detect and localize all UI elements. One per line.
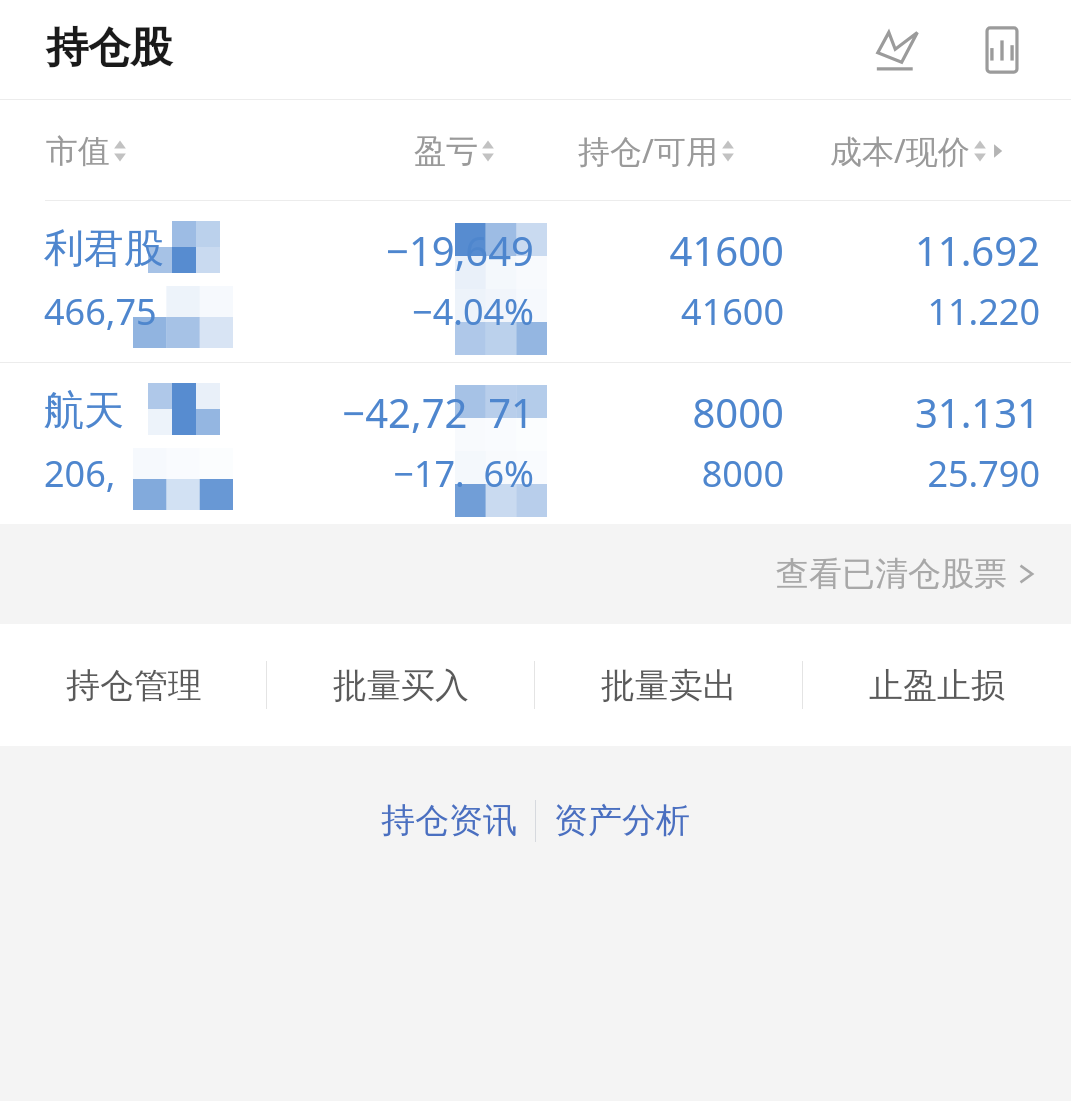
staticText: 持仓资讯	[381, 799, 517, 842]
button[interactable]: 利君股	[0, 201, 1071, 362]
staticText: 41600	[544, 287, 784, 336]
button[interactable]: Bar chart	[963, 11, 1041, 89]
staticText: 8000	[544, 385, 784, 439]
staticText: 11.692	[800, 223, 1040, 277]
staticText: 利君股	[44, 223, 164, 273]
staticText: 206,	[44, 449, 116, 498]
button[interactable]: 市值	[46, 131, 127, 171]
staticText: 止盈止损	[869, 664, 1005, 707]
button[interactable]: 批量卖出	[535, 624, 803, 746]
staticText: 市值	[46, 131, 110, 171]
button[interactable]: 批量买入	[267, 624, 535, 746]
staticText: 资产分析	[554, 799, 690, 842]
staticText: 25.790	[800, 449, 1040, 498]
button[interactable]: 止盈止损	[803, 624, 1071, 746]
staticText: 持仓/可用	[578, 129, 718, 173]
button[interactable]: 持仓管理	[0, 624, 267, 746]
staticText: 31.131	[800, 385, 1040, 439]
staticText: 批量卖出	[601, 664, 737, 707]
staticText: 盈亏	[414, 131, 478, 171]
button[interactable]: 成本/现价	[830, 129, 1005, 173]
staticText: 批量买入	[333, 664, 469, 707]
staticText: 持仓股	[46, 22, 172, 75]
staticText: 41600	[544, 223, 784, 277]
staticText: −42,72 71	[234, 385, 534, 439]
staticText: −17. 6%	[234, 449, 534, 498]
staticText: 8000	[544, 449, 784, 498]
staticText: 持仓管理	[66, 664, 202, 707]
staticText: −4.04%	[234, 287, 534, 336]
button[interactable]: 查看已清仓股票	[766, 539, 1047, 609]
staticText: 成本/现价	[830, 129, 970, 173]
button[interactable]: 持仓资讯	[363, 783, 535, 858]
staticText: 查看已清仓股票	[776, 553, 1007, 595]
staticText: 航天	[44, 385, 124, 435]
button[interactable]: 航天	[0, 363, 1071, 524]
button[interactable]: 资产分析	[536, 783, 708, 858]
button[interactable]: 盈亏	[414, 131, 495, 171]
button[interactable]: Line chart	[859, 11, 937, 89]
staticText: 466,75	[44, 287, 157, 336]
staticText: 11.220	[800, 287, 1040, 336]
staticText: −19,649	[234, 223, 534, 277]
button[interactable]: 持仓/可用	[578, 129, 735, 173]
